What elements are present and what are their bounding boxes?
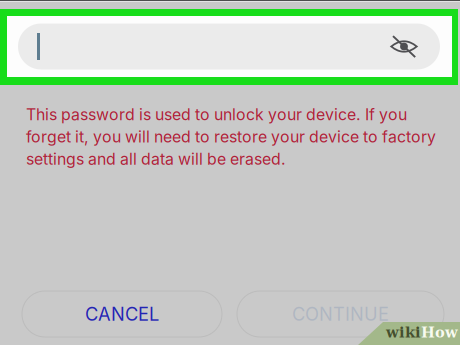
button[interactable]: Hide password xyxy=(390,34,440,58)
staticText: This password is used to unlock your dev… xyxy=(26,105,407,124)
staticText: wiki xyxy=(386,324,421,341)
staticText: CONTINUE xyxy=(292,303,389,325)
staticText: How xyxy=(421,324,458,341)
button[interactable]: CANCEL xyxy=(22,291,222,337)
staticText: settings and all data will be erased. xyxy=(26,149,286,169)
button[interactable]: CONTINUE xyxy=(237,291,444,337)
staticText: forget it, you will need to restore your… xyxy=(26,127,436,146)
staticText: CANCEL xyxy=(85,303,159,325)
